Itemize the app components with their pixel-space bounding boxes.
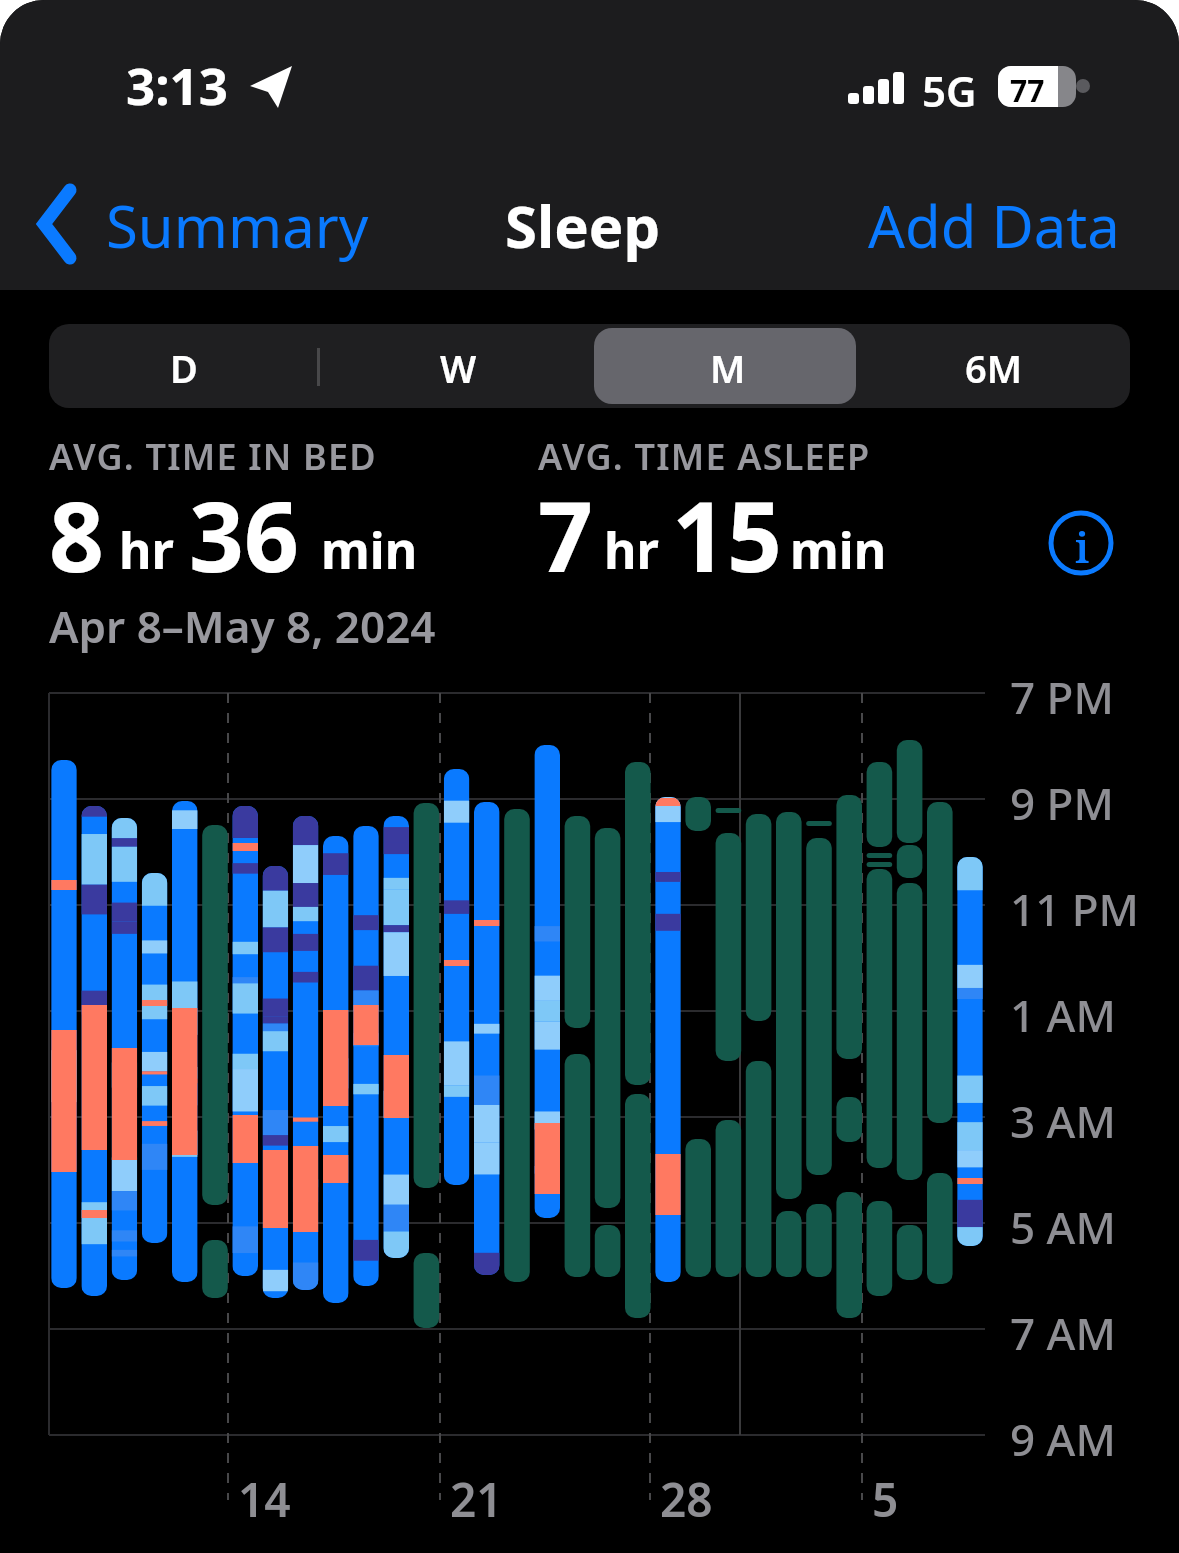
staticText: 7 <box>538 469 593 600</box>
button[interactable]: i <box>1046 508 1116 578</box>
staticText: AVG. TIME ASLEEP <box>538 432 871 481</box>
staticText: i <box>1075 518 1090 575</box>
staticText: 6M <box>965 342 1023 394</box>
staticText: 3:13 <box>126 50 228 119</box>
staticText: Sleep <box>505 186 661 265</box>
staticText: 28 <box>660 1468 713 1531</box>
staticText: hr <box>119 516 174 584</box>
staticText: 7 AM <box>1010 1303 1116 1363</box>
staticText: 9 AM <box>1010 1409 1116 1469</box>
button[interactable]: M <box>594 328 854 404</box>
staticText: min <box>321 516 418 584</box>
staticText: 8 <box>49 469 104 600</box>
button[interactable]: Summary <box>30 180 390 270</box>
button[interactable]: Add Data <box>860 180 1140 270</box>
staticText: 3 AM <box>1010 1091 1116 1151</box>
staticText: Add Data <box>868 186 1120 265</box>
staticText: 1 AM <box>1010 985 1116 1045</box>
staticText: 14 <box>238 1468 291 1531</box>
staticText: 11 PM <box>1010 879 1140 939</box>
button[interactable]: 6M <box>865 328 1125 404</box>
staticText: 36 <box>189 469 299 600</box>
staticText: W <box>440 342 477 394</box>
staticText: D <box>170 342 198 394</box>
staticText: hr <box>604 516 659 584</box>
staticText: AVG. TIME IN BED <box>49 432 377 481</box>
staticText: 5 <box>872 1468 899 1531</box>
staticText: min <box>790 516 887 584</box>
staticText: 77 <box>1010 70 1045 111</box>
staticText: 7 PM <box>1010 667 1114 727</box>
button[interactable]: D <box>54 328 314 404</box>
button[interactable]: W <box>324 328 584 404</box>
staticText: 21 <box>450 1468 503 1531</box>
staticText: Summary <box>106 186 369 265</box>
staticText: 5G <box>922 62 977 119</box>
staticText: 5 AM <box>1010 1197 1116 1257</box>
staticText: M <box>710 342 746 394</box>
staticText: 9 PM <box>1010 773 1114 833</box>
staticText: Apr 8–May 8, 2024 <box>49 596 436 656</box>
staticText: 15 <box>672 469 782 600</box>
